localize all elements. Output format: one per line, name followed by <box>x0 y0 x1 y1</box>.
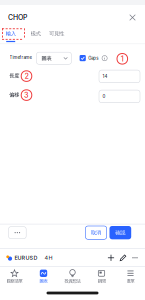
button[interactable]: 樣式 <box>29 30 42 42</box>
button[interactable]: 可見性 <box>49 30 65 42</box>
button[interactable]: 圖表 <box>29 267 58 287</box>
staticText: 新聞 <box>97 278 105 284</box>
button[interactable]: Timeframe <box>36 52 71 64</box>
button[interactable]: 觀察清單 <box>0 267 29 287</box>
staticText: 14 <box>102 74 107 79</box>
staticText: 取消 <box>91 229 101 236</box>
staticText: Timeframe <box>9 55 31 60</box>
button[interactable]: 投資想法 <box>58 267 87 287</box>
staticText: 2 <box>24 72 28 80</box>
button[interactable]: 新聞 <box>87 267 116 287</box>
staticText: 3 <box>24 91 29 99</box>
button[interactable]: About gaps <box>102 55 108 61</box>
button[interactable]: More options <box>8 227 26 239</box>
staticText: 0 <box>102 94 105 99</box>
staticText: 選單 <box>126 278 134 284</box>
button[interactable]: 取消 <box>85 226 107 239</box>
button[interactable]: More <box>129 252 141 264</box>
staticText: 長度 <box>9 73 19 79</box>
button[interactable]: 輸入 <box>5 30 16 42</box>
staticText: 偏移 <box>9 92 19 98</box>
staticText: 投資想法 <box>64 278 80 284</box>
button[interactable]: Offset <box>99 90 140 103</box>
staticText: 觀察清單 <box>6 278 22 284</box>
staticText: 圖表 <box>41 55 51 62</box>
staticText: 圖表 <box>39 278 47 284</box>
button[interactable]: Length <box>99 70 140 83</box>
staticText: Gaps <box>88 55 98 61</box>
staticText: CHOP <box>8 13 27 22</box>
button[interactable]: Add <box>105 252 117 264</box>
staticText: 確認 <box>115 229 125 236</box>
button[interactable]: Close <box>126 11 139 24</box>
button[interactable]: 確認 <box>109 226 131 239</box>
staticText: 樣式 <box>31 30 41 37</box>
button[interactable]: Gaps <box>80 55 98 62</box>
staticText: EURUSD <box>14 254 37 261</box>
staticText: 1 <box>121 54 124 63</box>
staticText: 輸入 <box>6 30 16 37</box>
staticText: 可見性 <box>49 30 64 37</box>
button[interactable]: 選單 <box>116 267 145 287</box>
staticText: 4H <box>44 254 52 261</box>
button[interactable]: Drawing tools <box>117 252 129 264</box>
